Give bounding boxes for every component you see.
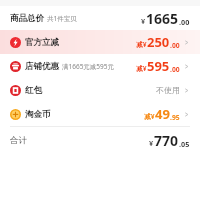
other: 展开官方立减	[183, 39, 190, 46]
staticText: 店铺优惠	[25, 61, 59, 72]
staticText: 不使用	[156, 85, 180, 95]
staticText: 250	[147, 33, 170, 51]
staticText: .00	[170, 65, 180, 74]
button[interactable]: 红包	[0, 78, 200, 102]
staticText: 红包	[25, 85, 42, 96]
other: 选择红包	[183, 87, 190, 94]
staticText: 商品总价	[10, 13, 44, 24]
staticText: ¥	[149, 138, 154, 148]
staticText: 1665	[146, 9, 179, 28]
staticText: 减¥	[136, 40, 147, 49]
staticText: .00	[170, 41, 180, 50]
staticText: 770	[154, 131, 179, 150]
button[interactable]: 淘金币	[0, 102, 200, 126]
staticText: .00	[179, 17, 190, 27]
staticText: 595	[147, 57, 170, 75]
other: 展开店铺优惠	[183, 63, 190, 70]
staticText: 49	[155, 105, 170, 123]
staticText: 满1665元减595元	[62, 62, 115, 71]
staticText: 共1件宝贝	[47, 14, 77, 23]
button[interactable]: 官方立减	[0, 30, 200, 54]
staticText: 官方立减	[25, 37, 59, 48]
staticText: ¥	[141, 16, 146, 26]
staticText: 减¥	[136, 64, 147, 73]
staticText: 淘金币	[25, 109, 51, 120]
staticText: .95	[170, 113, 180, 122]
button[interactable]: 店铺优惠	[0, 54, 200, 78]
staticText: .05	[179, 139, 190, 149]
other: 使用淘金币	[183, 111, 190, 118]
staticText: 减¥	[144, 112, 155, 121]
staticText: 合计	[10, 135, 27, 146]
